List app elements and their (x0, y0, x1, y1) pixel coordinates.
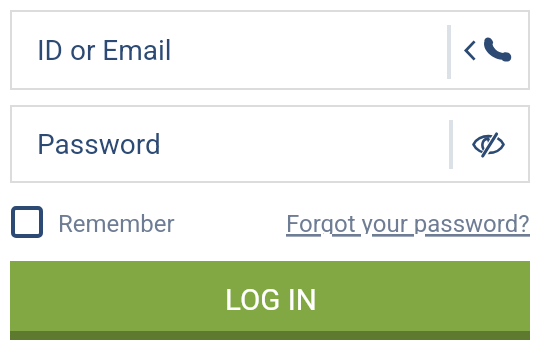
button[interactable]: Remember (10, 208, 175, 240)
staticText: Password (37, 128, 161, 161)
button[interactable]: Country code (452, 33, 486, 67)
staticText: LOG IN (225, 283, 317, 318)
button[interactable]: Phone number (475, 28, 517, 70)
staticText: Remember (58, 210, 175, 238)
staticText: Forgot your password? (286, 210, 530, 238)
button[interactable]: Password (10, 105, 530, 183)
button[interactable]: Forgot your password? (286, 210, 530, 238)
button[interactable]: LOG IN (10, 261, 530, 340)
button[interactable]: Show password (467, 123, 509, 165)
button[interactable]: ID or Email (10, 10, 530, 90)
staticText: ID or Email (37, 34, 172, 67)
